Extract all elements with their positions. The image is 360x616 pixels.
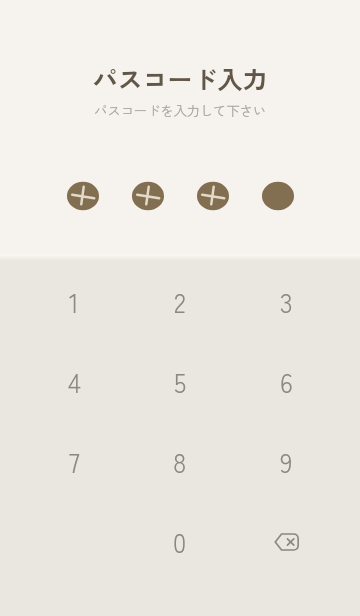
staticText: パスコードを入力して下さい [94,100,266,120]
button[interactable]: 2 [127,262,233,342]
staticText: 5 [174,363,187,401]
button[interactable]: Delete [233,502,339,582]
button[interactable]: 1 [21,262,127,342]
staticText: 6 [280,363,293,401]
button[interactable]: 7 [21,422,127,502]
staticText: 2 [174,283,186,321]
staticText: 8 [173,443,187,481]
other: Delete [274,532,299,552]
staticText: パスコード入力 [92,60,268,96]
staticText: 3 [280,283,293,321]
button[interactable]: 8 [127,422,233,502]
button[interactable]: 4 [21,342,127,422]
staticText: 0 [173,523,187,561]
button[interactable]: 0 [127,502,233,582]
button[interactable]: 6 [233,342,339,422]
staticText: 7 [69,443,80,481]
button[interactable]: 3 [233,262,339,342]
staticText: 4 [68,363,81,401]
staticText: 1 [69,283,79,321]
staticText: 9 [280,443,293,481]
button[interactable]: 5 [127,342,233,422]
button[interactable]: 9 [233,422,339,502]
